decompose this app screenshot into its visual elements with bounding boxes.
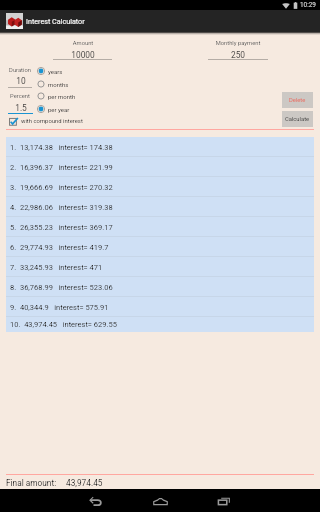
button[interactable]: 6. 29,774.93 interest= 419.7 bbox=[6, 237, 314, 257]
staticText: 2. 16,396.37 interest= 221.99 bbox=[10, 163, 113, 172]
staticText: 5. 26,355.23 interest= 369.17 bbox=[10, 223, 113, 232]
staticText: Amount bbox=[38, 40, 128, 47]
staticText: 10. 43,974.45 interest= 629.55 bbox=[10, 320, 117, 329]
staticText: per month bbox=[48, 93, 76, 100]
button[interactable]: 9. 40,344.9 interest= 575.91 bbox=[6, 297, 314, 317]
staticText: Interest Calculator bbox=[26, 17, 85, 25]
staticText: 1. 13,174.38 interest= 174.38 bbox=[10, 143, 113, 152]
button[interactable]: 7. 33,245.93 interest= 471 bbox=[6, 257, 314, 277]
button[interactable]: months bbox=[35, 78, 69, 90]
button[interactable]: Home bbox=[144, 489, 176, 512]
staticText: Final amount: bbox=[6, 478, 57, 488]
staticText: 10:29 bbox=[300, 1, 316, 9]
staticText: 6. 29,774.93 interest= 419.7 bbox=[10, 243, 109, 252]
staticText: 3. 19,666.69 interest= 270.32 bbox=[10, 183, 113, 192]
button[interactable]: with compound interest bbox=[8, 116, 83, 127]
staticText: 250 bbox=[193, 50, 283, 60]
button[interactable]: 8. 36,768.99 interest= 523.06 bbox=[6, 277, 314, 297]
button[interactable]: 10. 43,974.45 interest= 629.55 bbox=[6, 317, 314, 332]
staticText: with compound interest bbox=[21, 118, 83, 125]
staticText: per year bbox=[48, 106, 70, 113]
staticText: 10000 bbox=[38, 50, 128, 60]
button[interactable]: per month bbox=[35, 90, 76, 102]
staticText: 10 bbox=[1, 76, 41, 86]
staticText: Monthly payment bbox=[193, 40, 283, 47]
staticText: 8. 36,768.99 interest= 523.06 bbox=[10, 283, 113, 292]
button[interactable]: 5. 26,355.23 interest= 369.17 bbox=[6, 217, 314, 237]
staticText: years bbox=[48, 68, 63, 75]
button[interactable]: per year bbox=[35, 103, 70, 115]
staticText: 9. 40,344.9 interest= 575.91 bbox=[10, 303, 109, 312]
button[interactable]: 2. 16,396.37 interest= 221.99 bbox=[6, 157, 314, 177]
staticText: Duration bbox=[0, 67, 40, 74]
button[interactable]: Calculate bbox=[282, 111, 313, 127]
button[interactable]: Delete bbox=[282, 92, 313, 108]
button[interactable]: Recent apps bbox=[208, 489, 240, 512]
button[interactable]: 3. 19,666.69 interest= 270.32 bbox=[6, 177, 314, 197]
staticText: Calculate bbox=[285, 116, 310, 123]
button[interactable]: Back bbox=[80, 489, 112, 512]
button[interactable]: 1. 13,174.38 interest= 174.38 bbox=[6, 137, 314, 157]
staticText: 43,974.45 bbox=[66, 478, 103, 488]
staticText: Delete bbox=[289, 97, 306, 104]
staticText: 4. 22,986.06 interest= 319.38 bbox=[10, 203, 113, 212]
button[interactable]: 4. 22,986.06 interest= 319.38 bbox=[6, 197, 314, 217]
staticText: months bbox=[48, 81, 69, 88]
button[interactable]: years bbox=[35, 65, 63, 77]
staticText: 7. 33,245.93 interest= 471 bbox=[10, 263, 103, 272]
staticText: 1.5 bbox=[1, 103, 41, 113]
staticText: Percent bbox=[0, 93, 40, 100]
